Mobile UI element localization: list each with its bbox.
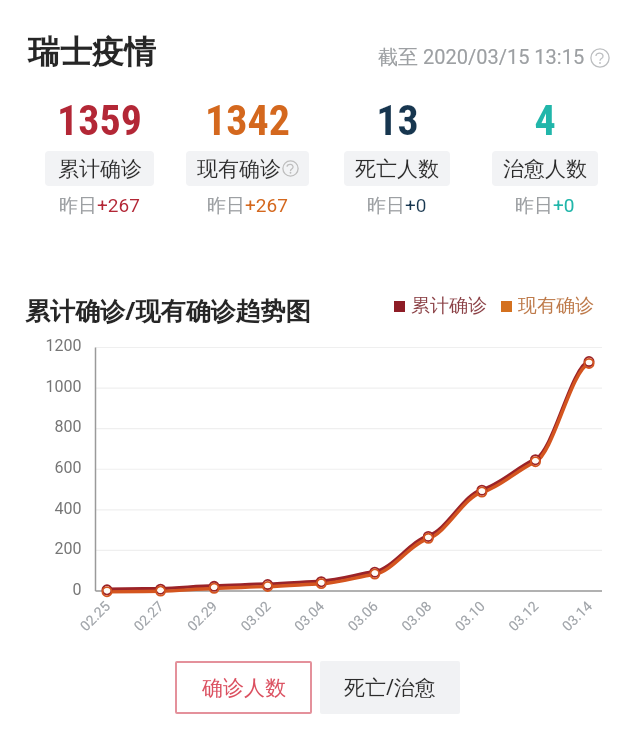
staticText: +267 xyxy=(245,194,288,216)
staticText: 昨日 xyxy=(515,194,553,218)
button[interactable]: 死亡人数 xyxy=(344,151,450,186)
button[interactable]: Info xyxy=(590,48,610,68)
staticText: 治愈人数 xyxy=(503,156,587,182)
staticText: 累计确诊 xyxy=(58,156,142,182)
staticText: 现有确诊 xyxy=(197,156,281,182)
staticText: 截至 2020/03/15 13:15 xyxy=(378,45,585,70)
staticText: 昨日 xyxy=(207,194,245,218)
staticText: +0 xyxy=(405,194,427,216)
staticText: 死亡人数 xyxy=(355,156,439,182)
staticText: 昨日 xyxy=(367,194,405,218)
button[interactable]: 累计确诊 xyxy=(394,294,487,318)
staticText: 13 xyxy=(376,96,419,145)
staticText: 累计确诊/现有确诊趋势图 xyxy=(25,293,311,327)
button[interactable]: 累计确诊 xyxy=(45,151,154,186)
button[interactable]: 确诊人数 xyxy=(175,661,312,714)
staticText: 4 xyxy=(534,96,556,145)
button[interactable]: 死亡/治愈 xyxy=(320,661,460,714)
staticText: 累计确诊 xyxy=(411,294,487,318)
staticText: +267 xyxy=(97,194,140,216)
staticText: +0 xyxy=(553,194,575,216)
staticText: 1342 xyxy=(205,96,290,145)
staticText: 昨日 xyxy=(59,194,97,218)
staticText: 1359 xyxy=(57,96,142,145)
staticText: 死亡/治愈 xyxy=(344,673,436,702)
staticText: 现有确诊 xyxy=(518,294,594,318)
button[interactable]: 现有确诊 xyxy=(186,151,309,186)
button[interactable]: 治愈人数 xyxy=(492,151,598,186)
staticText: 确诊人数 xyxy=(202,675,286,701)
staticText: 瑞士疫情 xyxy=(28,32,156,72)
button[interactable]: 现有确诊 xyxy=(501,294,594,318)
